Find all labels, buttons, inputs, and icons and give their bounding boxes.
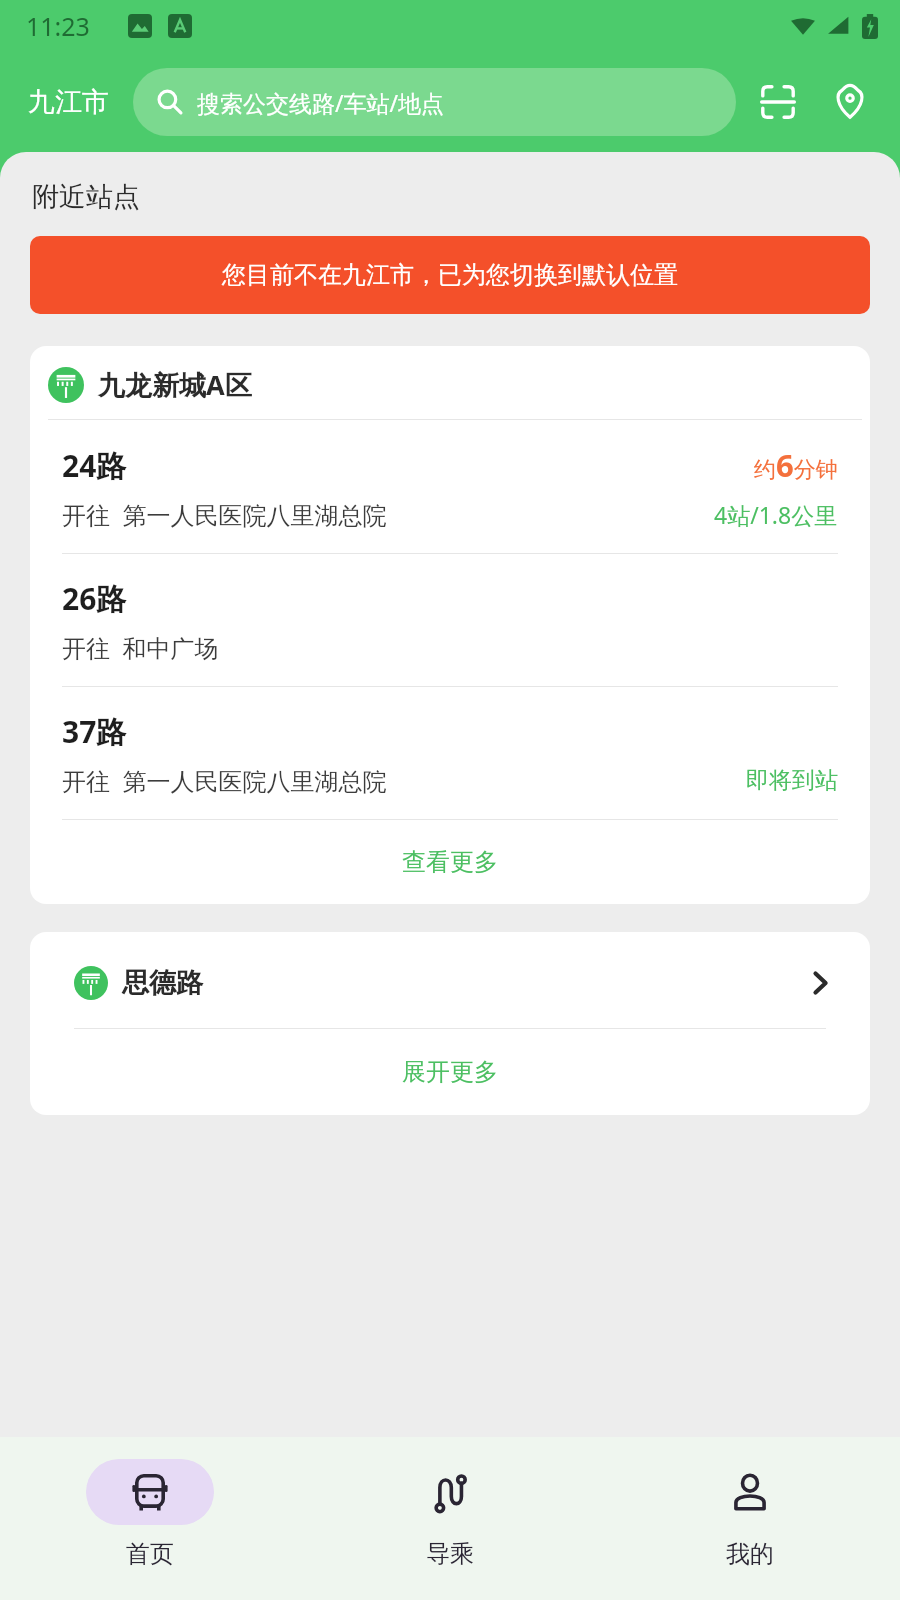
button[interactable]: 首页 <box>0 1437 300 1600</box>
staticText: 您目前不在九江市，已为您切换到默认位置 <box>222 260 678 290</box>
button[interactable]: 导乘 <box>300 1437 600 1600</box>
staticText: 思德路 <box>122 966 203 1000</box>
button[interactable]: 搜索公交线路/车站/地点 <box>133 68 736 136</box>
button[interactable]: 定位 <box>822 74 878 130</box>
staticText: 首页 <box>126 1539 174 1569</box>
staticText: 九龙新城A区 <box>98 366 252 403</box>
staticText: 开往 第一人民医院八里湖总院 <box>62 498 387 531</box>
staticText: 11:23 <box>26 9 90 43</box>
button[interactable]: 思德路 <box>30 932 870 1028</box>
staticText: 开往 第一人民医院八里湖总院 <box>62 764 387 797</box>
staticText: 展开更多 <box>402 1057 498 1087</box>
button[interactable]: 24路 <box>30 420 870 553</box>
staticText: 附近站点 <box>32 180 140 214</box>
button[interactable]: 37路 <box>30 687 870 819</box>
button[interactable]: 展开更多 <box>30 1029 870 1115</box>
staticText: 37路 <box>62 711 127 752</box>
button[interactable]: 查看更多 <box>30 820 870 904</box>
staticText: 搜索公交线路/车站/地点 <box>197 87 445 118</box>
staticText: 26路 <box>62 578 127 619</box>
button[interactable]: 扫一扫 <box>750 74 806 130</box>
staticText: 即将到站 <box>746 766 838 795</box>
staticText: 查看更多 <box>402 847 498 877</box>
button[interactable]: 26路 <box>30 554 870 686</box>
button[interactable]: 九江市 <box>22 81 115 123</box>
button[interactable]: 您目前不在九江市，已为您切换到默认位置 <box>30 236 870 314</box>
staticText: 24路 <box>62 445 127 486</box>
staticText: 九江市 <box>28 85 109 119</box>
staticText: 导乘 <box>426 1539 474 1569</box>
staticText: 4站/1.8公里 <box>714 499 838 530</box>
staticText: 我的 <box>726 1539 774 1569</box>
button[interactable]: 九龙新城A区 <box>30 346 870 419</box>
staticText: 约6分钟 <box>754 444 838 486</box>
button[interactable]: 我的 <box>600 1437 900 1600</box>
staticText: 开往 和中广场 <box>62 631 219 664</box>
